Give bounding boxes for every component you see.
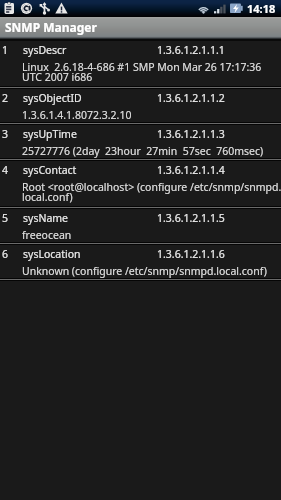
staticText: 1 xyxy=(2,43,9,57)
staticText: sysUpTime xyxy=(23,127,77,141)
staticText: 1.3.6.1.2.1.1.4 xyxy=(157,163,225,177)
button[interactable]: 5 xyxy=(0,209,281,242)
staticText: 14:18 xyxy=(247,1,276,16)
staticText: SNMP Manager xyxy=(5,19,97,35)
staticText: sysContact xyxy=(23,163,77,177)
staticText: 3 xyxy=(2,127,9,141)
button[interactable]: 6 xyxy=(0,245,281,278)
button[interactable]: 2 xyxy=(0,89,281,122)
staticText: 4 xyxy=(2,163,9,177)
button[interactable]: 4 xyxy=(0,161,281,206)
staticText: 25727776 (2day 23hour 27min 57sec 760mse… xyxy=(22,144,264,158)
button[interactable]: 1 xyxy=(0,41,281,86)
staticText: sysDescr xyxy=(23,43,67,57)
staticText: 5 xyxy=(2,211,9,225)
staticText: Root <root@localhost> (configure /etc/sn… xyxy=(22,180,281,204)
staticText: 6 xyxy=(2,247,9,261)
staticText: sysObjectID xyxy=(23,91,82,105)
staticText: 1.3.6.1.2.1.1.6 xyxy=(157,247,225,261)
staticText: 2 xyxy=(2,91,9,105)
staticText: Linux 2.6.18-4-686 #1 SMP Mon Mar 26 17:… xyxy=(22,60,281,84)
button[interactable]: 3 xyxy=(0,125,281,158)
staticText: 1.3.6.1.2.1.1.2 xyxy=(157,91,225,105)
staticText: Unknown (configure /etc/snmp/snmpd.local… xyxy=(22,264,267,278)
staticText: 1.3.6.1.2.1.1.5 xyxy=(157,211,225,225)
staticText: sysName xyxy=(23,211,69,225)
staticText: 1.3.6.1.2.1.1.1 xyxy=(157,43,225,57)
staticText: freeocean xyxy=(22,228,72,242)
staticText: 1.3.6.1.2.1.1.3 xyxy=(157,127,225,141)
staticText: sysLocation xyxy=(23,247,81,261)
staticText: 1.3.6.1.4.1.8072.3.2.10 xyxy=(22,108,132,122)
